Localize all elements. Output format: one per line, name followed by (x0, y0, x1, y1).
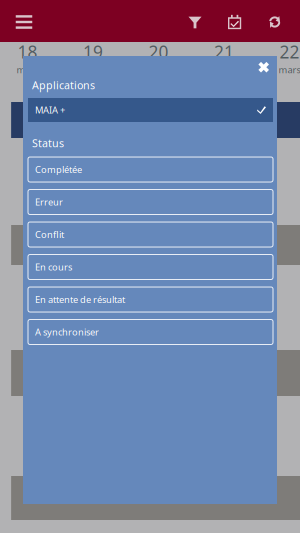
staticText: 20 (148, 40, 168, 63)
staticText: Complétée (35, 163, 82, 176)
button[interactable]: En cours (28, 254, 273, 279)
staticText: Status (32, 136, 64, 150)
button[interactable]: Conflit (28, 222, 273, 247)
staticText: En cours (35, 261, 72, 273)
staticText: En attente de résultat (35, 293, 125, 306)
button[interactable]: Filtrer (171, 0, 219, 42)
button[interactable]: 22 (257, 43, 300, 73)
button[interactable]: Synchroniser (250, 0, 300, 42)
button[interactable]: MAIA + (28, 98, 273, 122)
button[interactable]: 21 (191, 43, 257, 73)
button[interactable]: En attente de résultat (28, 287, 273, 312)
button[interactable]: A synchroniser (28, 319, 273, 344)
button[interactable]: Complétée (28, 157, 273, 182)
staticText: 22 (279, 40, 299, 63)
button[interactable]: 19 (60, 43, 126, 73)
button[interactable]: 18 (0, 43, 60, 73)
button[interactable]: Menu (0, 0, 48, 42)
staticText: Applications (32, 78, 95, 92)
staticText: Erreur (35, 196, 63, 208)
staticText: 21 (214, 40, 234, 63)
staticText: mars (278, 63, 300, 76)
staticText: mars (16, 63, 38, 76)
staticText: 19 (83, 40, 103, 63)
staticText: A synchroniser (35, 326, 99, 338)
staticText: 18 (17, 40, 37, 63)
staticText: MAIA + (35, 104, 65, 116)
button[interactable]: Erreur (28, 189, 273, 214)
button[interactable]: Fermer (247, 56, 277, 76)
button[interactable]: 20 (126, 43, 191, 73)
button[interactable]: Calendrier (219, 0, 250, 42)
staticText: Conflit (35, 228, 64, 241)
